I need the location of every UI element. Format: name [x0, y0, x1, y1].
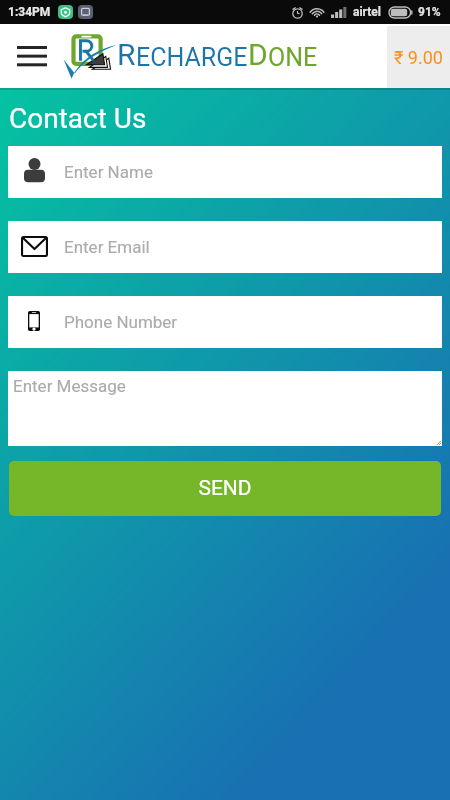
- button[interactable]: Open navigation menu: [2, 24, 64, 88]
- staticText: 91%: [418, 5, 441, 19]
- staticText: 1:34PM: [8, 5, 51, 19]
- button[interactable]: Enter Email: [8, 221, 442, 273]
- staticText: Enter Name: [64, 162, 153, 182]
- staticText: ECHARGE: [136, 43, 248, 72]
- button[interactable]: SEND: [9, 461, 441, 516]
- staticText: Enter Message: [13, 376, 126, 396]
- staticText: airtel: [353, 5, 382, 19]
- staticText: D: [248, 37, 268, 72]
- button[interactable]: Phone Number: [8, 296, 442, 348]
- staticText: ONE: [268, 43, 318, 72]
- staticText: R: [117, 37, 136, 72]
- button[interactable]: Enter Name: [8, 146, 442, 198]
- staticText: ₹ 9.00: [394, 47, 443, 68]
- staticText: Phone Number: [64, 312, 178, 332]
- staticText: Enter Email: [64, 237, 150, 257]
- button[interactable]: Enter Message: [8, 371, 442, 446]
- staticText: SEND: [198, 476, 252, 501]
- staticText: Contact Us: [9, 102, 147, 135]
- button[interactable]: ₹ 9.00: [387, 26, 450, 89]
